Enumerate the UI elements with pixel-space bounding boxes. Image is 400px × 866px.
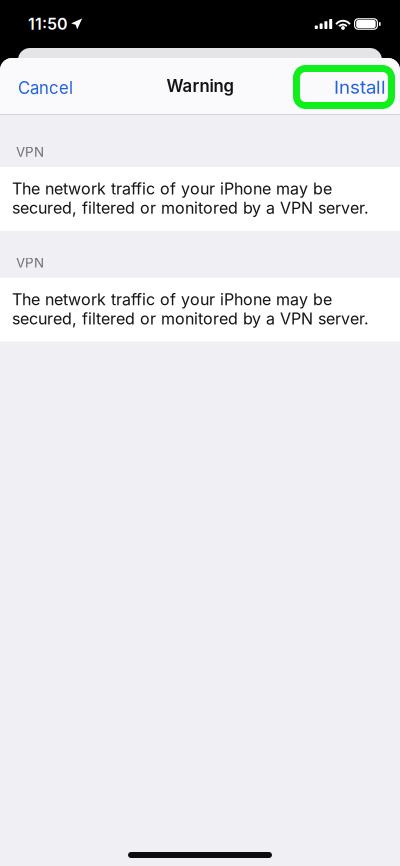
staticText: Install bbox=[334, 76, 386, 98]
staticText: Cancel bbox=[18, 78, 73, 98]
staticText: 11:50 bbox=[28, 14, 68, 34]
staticText: The network traffic of your iPhone may b… bbox=[12, 179, 369, 218]
staticText: VPN bbox=[16, 255, 44, 271]
staticText: VPN bbox=[16, 144, 44, 160]
staticText: Warning bbox=[166, 76, 233, 96]
button[interactable]: Install bbox=[293, 65, 395, 109]
button[interactable]: Cancel bbox=[0, 66, 82, 110]
staticText: The network traffic of your iPhone may b… bbox=[12, 290, 369, 328]
